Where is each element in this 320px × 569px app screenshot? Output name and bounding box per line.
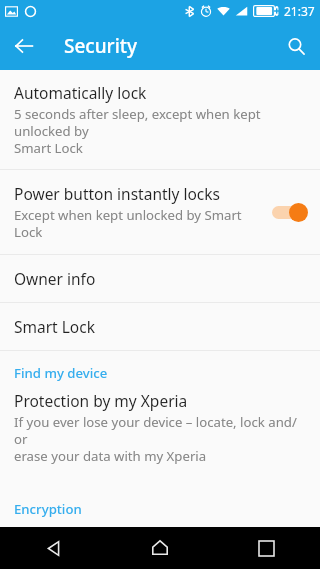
button[interactable]: Protection by my Xperia: [0, 388, 320, 479]
button[interactable]: Smart Lock: [0, 303, 320, 350]
button[interactable]: Search: [272, 22, 320, 70]
staticText: Smart Lock: [14, 316, 95, 337]
staticText: Find my device: [14, 364, 108, 382]
staticText: Encryption: [14, 500, 82, 518]
staticText: Owner info: [14, 268, 96, 289]
staticText: 21:37: [284, 3, 315, 19]
staticText: Except when kept unlocked by Smart Lock: [14, 206, 264, 241]
button[interactable]: Recent apps: [213, 527, 320, 569]
staticText: Protection by my Xperia: [14, 390, 188, 411]
button[interactable]: Back: [0, 22, 48, 70]
staticText: Power button instantly locks: [14, 183, 221, 204]
button[interactable]: Owner info: [0, 255, 320, 302]
button[interactable]: Back: [0, 527, 106, 569]
button[interactable]: Power button instantly locks toggle: [270, 201, 308, 223]
staticText: 5 seconds after sleep, except when kept …: [14, 105, 306, 157]
staticText: If you ever lose your device – locate, l…: [14, 413, 306, 465]
staticText: Automatically lock: [14, 82, 147, 103]
staticText: Security: [64, 33, 138, 59]
button[interactable]: Automatically lock: [0, 70, 320, 169]
button[interactable]: Home: [106, 527, 213, 569]
button[interactable]: Power button instantly locks: [0, 170, 320, 254]
